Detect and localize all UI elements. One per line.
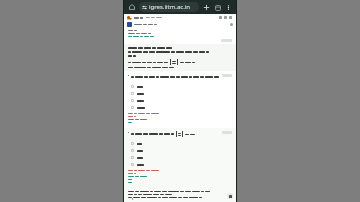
button[interactable] — [128, 90, 232, 97]
button[interactable]: Home — [127, 2, 137, 12]
button[interactable]: Accessibility widget — [227, 193, 233, 199]
button[interactable] — [219, 16, 222, 19]
staticText: igres.iitm.ac.in — [149, 3, 191, 11]
button[interactable] — [124, 21, 236, 28]
button[interactable] — [124, 14, 236, 21]
button[interactable] — [229, 16, 232, 19]
button[interactable] — [128, 154, 232, 161]
button[interactable] — [128, 83, 232, 90]
button[interactable] — [128, 97, 232, 104]
button[interactable] — [224, 16, 227, 19]
button[interactable]: Tab switcher — [212, 2, 223, 13]
button[interactable]: New tab — [201, 2, 212, 13]
button[interactable] — [128, 147, 232, 154]
button[interactable] — [128, 140, 232, 147]
button[interactable]: igres.iitm.ac.in — [139, 2, 199, 12]
button[interactable] — [128, 161, 232, 168]
button[interactable]: More options — [223, 2, 233, 12]
button[interactable] — [128, 104, 232, 111]
